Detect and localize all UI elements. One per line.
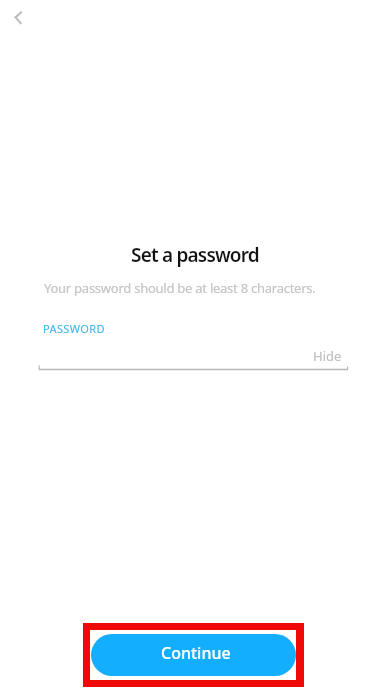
staticText: Hide (313, 347, 342, 365)
staticText: PASSWORD (43, 321, 105, 336)
staticText: Continue (161, 642, 231, 664)
button[interactable]: Back (2, 0, 38, 36)
button[interactable]: Continue (91, 634, 296, 676)
button[interactable]: Hide (301, 343, 352, 371)
button[interactable]: Password input field (38, 340, 350, 374)
staticText: Your password should be at least 8 chara… (44, 279, 316, 297)
staticText: Set a password (2, 242, 386, 268)
